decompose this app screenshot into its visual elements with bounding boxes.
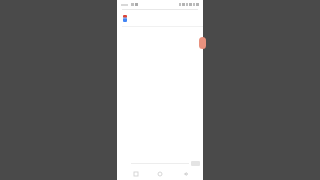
button[interactable]: Home [154, 168, 166, 180]
button[interactable]: Account [117, 10, 203, 26]
button[interactable]: Compose [199, 37, 206, 49]
button[interactable]: Back [179, 168, 191, 180]
button[interactable]: Recent apps [130, 168, 142, 180]
other: Account [123, 15, 127, 22]
